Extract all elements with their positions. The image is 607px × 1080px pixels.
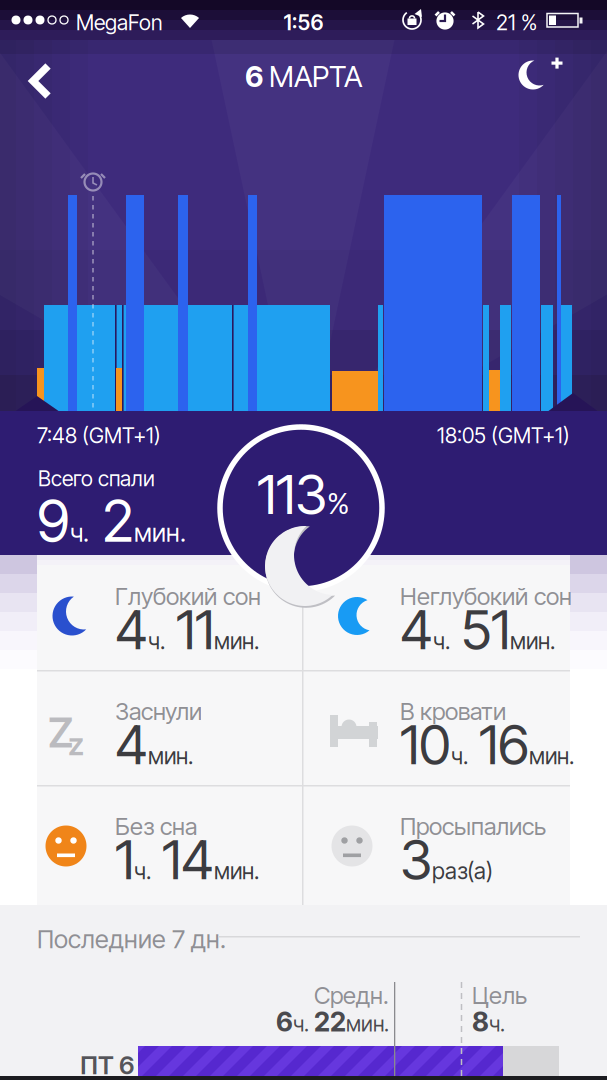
- staticText: 1:56: [283, 10, 323, 35]
- staticText: 4ч. 51мин.: [400, 597, 555, 661]
- staticText: 1ч. 14мин.: [115, 827, 259, 891]
- staticText: 18:05 (GMT+1): [437, 423, 570, 448]
- button[interactable]: Back: [22, 58, 66, 104]
- staticText: 4ч. 11мин.: [115, 597, 259, 661]
- staticText: 6 МАРТА: [245, 59, 362, 94]
- staticText: 8ч.: [472, 1006, 505, 1037]
- staticText: 113%: [257, 462, 349, 526]
- staticText: Последние 7 дн.: [37, 924, 226, 954]
- button[interactable]: Add sleep: [506, 52, 568, 98]
- staticText: MegaFon: [76, 10, 163, 35]
- staticText: Неглубокий сон: [400, 582, 572, 610]
- staticText: ПТ 6: [80, 1050, 134, 1080]
- staticText: 6ч. 22мин.: [276, 1006, 389, 1037]
- staticText: Заснули: [115, 697, 202, 725]
- staticText: 21 %: [496, 10, 537, 35]
- staticText: Всего спали: [38, 466, 155, 491]
- staticText: Глубокий сон: [115, 582, 261, 610]
- staticText: Z: [48, 708, 73, 757]
- staticText: 3раз(а): [400, 827, 493, 891]
- staticText: 9ч. 2мин.: [37, 487, 186, 555]
- staticText: 7:48 (GMT+1): [37, 423, 161, 448]
- staticText: 10ч. 16мин.: [400, 712, 574, 776]
- staticText: Цель: [472, 981, 527, 1009]
- staticText: Просыпались: [400, 812, 546, 840]
- staticText: z: [68, 726, 84, 762]
- staticText: Средн.: [314, 981, 389, 1009]
- staticText: Без сна: [115, 812, 197, 840]
- staticText: 4мин.: [115, 712, 193, 776]
- staticText: В кровати: [400, 697, 506, 725]
